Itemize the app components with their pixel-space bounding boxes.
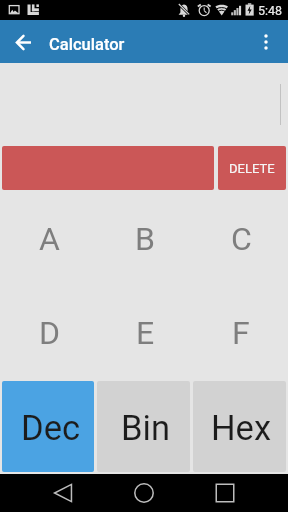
staticText: Hex [211, 408, 272, 448]
button[interactable]: Hex [193, 381, 286, 472]
staticText: Dec [21, 408, 80, 448]
button[interactable]: DELETE [218, 146, 286, 190]
staticText: Bin [121, 408, 170, 448]
button[interactable]: Dec [2, 381, 94, 472]
button[interactable]: B [96, 190, 192, 285]
staticText: C [231, 220, 252, 258]
staticText: A [39, 220, 60, 258]
staticText: F [232, 314, 250, 352]
staticText: B [135, 220, 155, 258]
button[interactable]: Bin [97, 381, 190, 472]
staticText: Calculator [49, 35, 125, 54]
button[interactable]: F [192, 285, 288, 380]
button[interactable]: Back [43, 474, 83, 512]
button[interactable]: More options [245, 20, 288, 63]
button[interactable]: A [0, 190, 96, 285]
staticText: 5:48 [258, 3, 283, 18]
staticText: E [136, 314, 155, 352]
staticText: DELETE [229, 161, 275, 176]
button[interactable]: D [0, 285, 96, 380]
button[interactable]: Recents [205, 474, 245, 512]
button[interactable]: C [192, 190, 288, 285]
button[interactable]: Back [0, 20, 43, 63]
staticText: D [39, 314, 60, 352]
button[interactable]: Home [124, 474, 164, 512]
button[interactable]: E [96, 285, 192, 380]
